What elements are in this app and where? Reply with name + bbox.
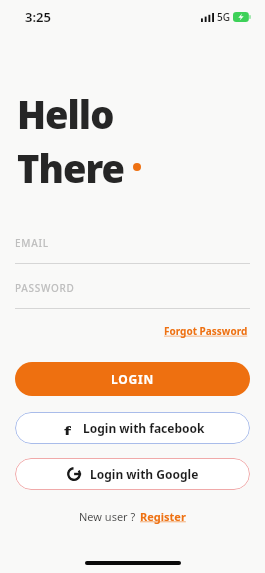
staticText: 5G (217, 10, 230, 24)
staticText: Forgot Password (164, 324, 248, 338)
staticText: PASSWORD (15, 281, 75, 295)
button[interactable]: Forgot Password (162, 322, 250, 340)
button[interactable]: EMAIL (15, 236, 250, 264)
button[interactable]: PASSWORD (15, 281, 250, 309)
staticText: EMAIL (15, 236, 49, 250)
button[interactable]: LOGIN (15, 362, 250, 396)
staticText: f (64, 421, 71, 435)
other: Facebook (60, 421, 74, 435)
staticText: Login with Google (90, 466, 199, 482)
button[interactable]: Google (15, 458, 250, 490)
staticText: There (17, 142, 124, 194)
button[interactable]: Register (139, 507, 187, 526)
button[interactable]: Facebook (15, 412, 250, 444)
staticText: LOGIN (111, 371, 155, 387)
staticText: Register (140, 509, 186, 524)
other: Google (67, 467, 81, 481)
staticText: 3:25 (25, 8, 51, 26)
staticText: New user ? (79, 509, 139, 524)
staticText: Login with facebook (83, 420, 205, 436)
staticText: Hello (17, 88, 114, 140)
